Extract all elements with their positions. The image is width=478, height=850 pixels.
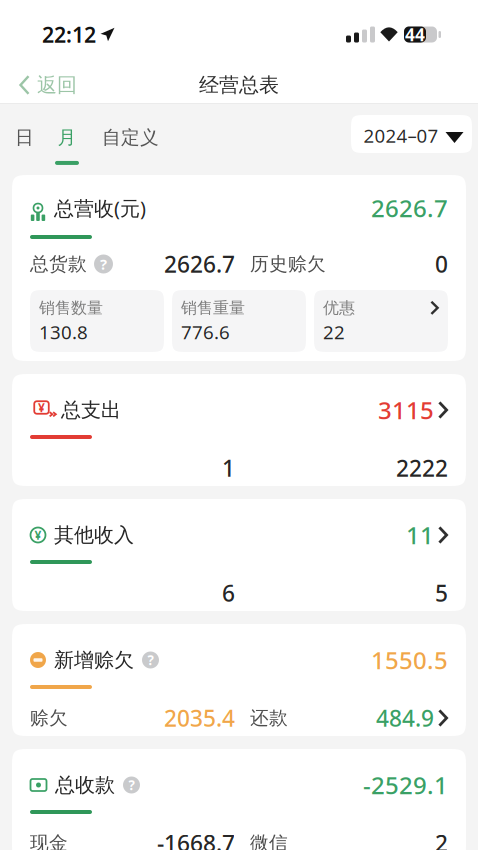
staticText: 历史赊欠 [250, 252, 326, 275]
staticText: 现金 [30, 831, 68, 850]
staticText: 2626.7 [371, 192, 448, 224]
staticText: 44 [405, 23, 425, 46]
staticText: 3115 [378, 394, 434, 426]
staticText: 月 [57, 126, 76, 149]
staticText: 总货款 [30, 252, 87, 275]
staticText: ? [147, 651, 153, 669]
staticText: 2024–07 [363, 123, 438, 148]
staticText: 自定义 [102, 126, 159, 149]
button[interactable]: 说明 [94, 254, 113, 273]
staticText: 1550.5 [371, 644, 448, 676]
button[interactable]: 说明 [142, 651, 159, 668]
staticText: 22 [323, 320, 345, 344]
staticText: 销售数量 [39, 298, 103, 318]
staticText: 新增赊欠 [54, 648, 134, 672]
staticText: 还款 [250, 706, 288, 729]
staticText: 130.8 [39, 320, 88, 344]
staticText: -2529.1 [363, 769, 448, 801]
button[interactable]: 销售重量 [172, 290, 306, 352]
staticText: 11 [406, 519, 434, 551]
staticText: 总营收(元) [54, 195, 146, 221]
button[interactable]: 优惠 [314, 290, 448, 352]
staticText: 2035.4 [164, 703, 235, 733]
staticText: 22:12 [42, 20, 96, 49]
staticText: 2222 [396, 453, 448, 483]
staticText: ? [100, 254, 107, 274]
staticText: 1 [222, 453, 235, 483]
staticText: 总支出 [61, 398, 121, 422]
staticText: ¥ [34, 527, 41, 543]
staticText: 5 [435, 578, 448, 608]
staticText: 总收款 [55, 773, 115, 797]
button[interactable]: 说明 [123, 776, 140, 793]
staticText: 日 [15, 126, 34, 149]
staticText: 6 [222, 578, 235, 608]
staticText: -1668.7 [157, 828, 235, 850]
button[interactable]: 还款 [250, 703, 448, 733]
staticText: 2626.7 [164, 249, 235, 279]
staticText: 其他收入 [54, 523, 134, 547]
staticText: ¥ [38, 399, 45, 415]
staticText: 返回 [37, 73, 77, 97]
staticText: ? [128, 776, 134, 794]
button[interactable]: 返回 [0, 73, 77, 97]
staticText: 赊欠 [30, 706, 68, 729]
staticText: 2 [435, 828, 448, 850]
staticText: 微信 [250, 831, 288, 850]
staticText: 优惠 [323, 298, 355, 318]
button[interactable]: 自定义 [102, 126, 159, 149]
button[interactable]: 日 [15, 126, 34, 149]
staticText: 484.9 [376, 703, 434, 733]
button[interactable]: 月 [55, 126, 79, 165]
button[interactable]: 2024–07 [351, 115, 472, 153]
staticText: 销售重量 [181, 298, 245, 318]
button[interactable]: ¥ [12, 374, 466, 486]
staticText: 0 [435, 249, 448, 279]
button[interactable]: 销售数量 [30, 290, 164, 352]
button[interactable]: ¥ [12, 499, 466, 611]
staticText: 776.6 [181, 320, 230, 344]
staticText: 经营总表 [199, 73, 279, 97]
